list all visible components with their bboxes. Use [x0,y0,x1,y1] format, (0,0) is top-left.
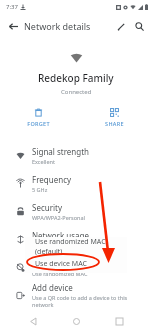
button[interactable]: SHARE [76,106,152,129]
staticText: Add device [32,282,73,293]
staticText: FORGET [27,120,50,127]
button[interactable]: Use randomized MAC (default) [25,237,127,255]
staticText: Network usage [32,230,89,241]
staticText: Use a QR code to add a device to this ne… [32,294,144,308]
staticText: Privacy [32,258,59,269]
staticText: WPA/WPA2-Personal [32,214,85,221]
button[interactable]: Home [66,311,86,331]
staticText: Use device MAC [35,259,87,269]
button[interactable]: Recents [109,311,129,331]
staticText: Use randomized MAC (default) [35,237,127,255]
button[interactable]: Network usage [0,225,152,253]
staticText: Security [32,202,63,213]
button[interactable]: Signal strength [0,141,152,169]
staticText: Network details [24,20,91,32]
staticText: Frequency [32,174,72,185]
staticText: Signal strength [32,146,90,157]
button[interactable]: Security [0,197,152,225]
staticText: Connected [61,88,92,96]
staticText: Redekop Family [38,71,114,85]
staticText: Excellent [32,158,55,165]
staticText: 5 GHz [32,186,48,193]
button[interactable]: Use device MAC [25,255,127,273]
button[interactable]: Privacy [0,253,152,281]
staticText: Use randomized MAC [32,270,88,277]
button[interactable]: Frequency [0,169,152,197]
staticText: 7:37 [6,3,18,11]
button[interactable]: Edit [112,17,130,35]
button[interactable]: FORGET [0,106,76,129]
staticText: SHARE [105,120,124,127]
button[interactable]: Add device [0,281,152,309]
button[interactable]: Search [130,17,148,35]
staticText: Detect automatically [32,242,86,249]
button[interactable]: Back [5,18,21,34]
button[interactable]: Back [23,311,43,331]
